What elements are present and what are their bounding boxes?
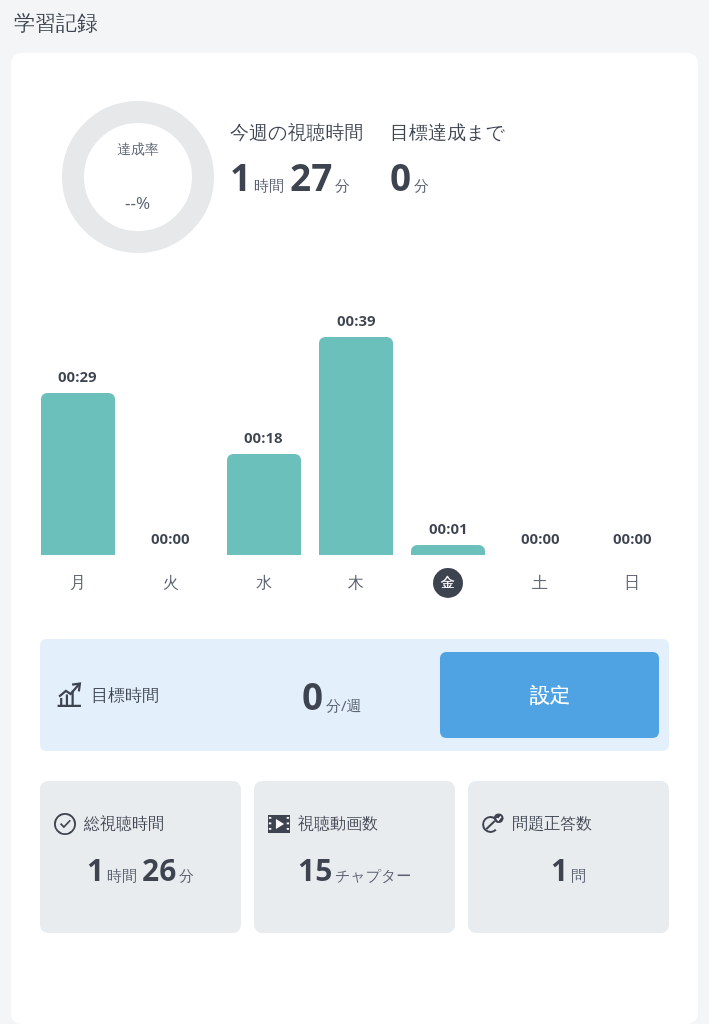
staticText: 1 [230,151,252,201]
staticText: 分 [414,177,429,196]
staticText: 総視聴時間 [84,814,164,834]
staticText: 26 [142,849,177,890]
staticText: 視聴動画数 [298,814,378,834]
staticText: 火 [163,573,179,593]
staticText: 問 [571,867,586,886]
staticText: 設定 [530,683,570,708]
staticText: 目標時間 [91,685,159,706]
staticText: 27 [290,151,333,201]
staticText: 1 [87,849,105,890]
staticText: 0 [390,151,412,201]
staticText: 達成率 [117,141,159,159]
staticText: 今週の視聴時間 [230,121,364,145]
staticText: 1 [551,849,569,890]
staticText: 分 [179,867,194,886]
button[interactable]: Correct answers [468,781,669,933]
staticText: チャプター [335,867,412,886]
staticText: 0 [302,670,324,720]
staticText: 分 [335,177,350,196]
staticText: --% [125,191,151,214]
staticText: 学習記録 [14,10,98,36]
other: Videos watched [268,813,290,835]
staticText: 15 [298,849,333,890]
button[interactable]: Total watch time [40,781,241,933]
staticText: 00:18 [244,427,283,447]
staticText: 問題正答数 [512,814,592,834]
staticText: 00:00 [521,528,560,548]
staticText: 木 [348,573,364,593]
staticText: 金 [441,574,455,592]
staticText: 00:29 [58,366,97,386]
button[interactable]: Videos watched [254,781,455,933]
staticText: 目標達成まで [390,121,505,145]
staticText: 00:39 [337,310,376,330]
staticText: 日 [624,573,640,593]
staticText: 土 [532,573,548,593]
staticText: 00:00 [151,528,190,548]
staticText: 時間 [254,177,284,196]
staticText: 時間 [107,867,137,886]
button[interactable]: 設定 [440,652,659,738]
staticText: 水 [256,573,272,593]
staticText: 00:00 [613,528,652,548]
staticText: 月 [70,573,86,593]
staticText: 分/週 [326,695,362,715]
other: Total watch time [54,813,76,835]
other: Correct answers [482,813,504,835]
staticText: 00:01 [429,518,468,538]
